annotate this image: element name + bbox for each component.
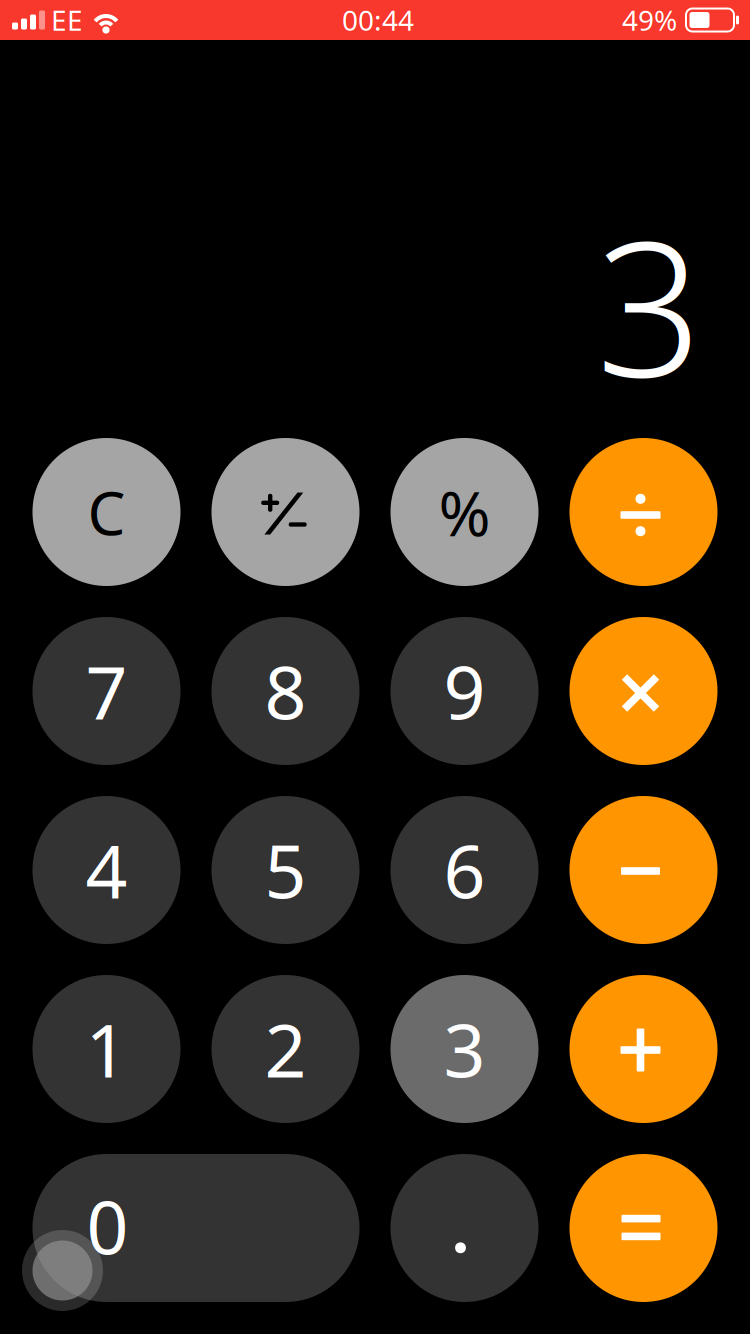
staticText: 3 (596, 180, 703, 428)
staticText: 3 (443, 1000, 485, 1098)
button[interactable]: 8 (211, 617, 359, 765)
staticText: EE (51, 1, 83, 39)
staticText: 4 (85, 821, 127, 919)
button[interactable]: 2 (211, 975, 359, 1123)
staticText: % (438, 470, 490, 554)
button[interactable]: C (32, 438, 180, 586)
button[interactable]: 1 (32, 975, 180, 1123)
staticText: 0 (86, 1177, 128, 1275)
button[interactable]: Equals (569, 1154, 717, 1302)
button[interactable]: Multiply (569, 617, 717, 765)
button[interactable]: 3 (390, 975, 538, 1123)
button[interactable]: Add (569, 975, 717, 1123)
button[interactable]: AssistiveTouch (22, 1230, 103, 1311)
button[interactable]: % (390, 438, 538, 586)
staticText: 49% (622, 1, 677, 39)
button[interactable]: Subtract (569, 796, 717, 944)
button[interactable]: Decimal point (390, 1154, 538, 1302)
staticText: 00:44 (342, 1, 414, 39)
button[interactable]: 5 (211, 796, 359, 944)
staticText: 7 (85, 642, 127, 740)
staticText: 1 (85, 1000, 127, 1098)
staticText: 9 (443, 642, 485, 740)
button[interactable]: 4 (32, 796, 180, 944)
staticText: 5 (264, 821, 306, 919)
button[interactable]: 6 (390, 796, 538, 944)
button[interactable]: Divide (569, 438, 717, 586)
button[interactable]: Plus minus (211, 438, 359, 586)
button[interactable]: 0 (32, 1154, 359, 1302)
staticText: C (87, 472, 125, 552)
button[interactable]: 7 (32, 617, 180, 765)
staticText: 2 (264, 1000, 306, 1098)
staticText: 6 (443, 821, 485, 919)
button[interactable]: 9 (390, 617, 538, 765)
staticText: 8 (264, 642, 306, 740)
